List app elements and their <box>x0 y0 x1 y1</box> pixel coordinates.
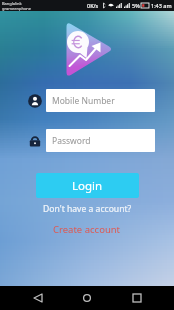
button[interactable]: Home <box>75 286 99 310</box>
button[interactable]: Mobile Number <box>46 89 155 112</box>
button[interactable]: Login <box>36 173 139 198</box>
staticText: Login <box>72 178 103 194</box>
staticText: Don't have a account? <box>43 203 132 215</box>
staticText: 0K/s <box>87 2 99 9</box>
staticText: grameenphone <box>2 6 32 11</box>
button[interactable]: Back <box>26 286 50 310</box>
staticText: 1:43 am <box>151 2 172 9</box>
staticText: Create account <box>53 223 121 236</box>
staticText: Password <box>52 135 91 147</box>
button[interactable]: Password <box>46 129 155 152</box>
staticText: Mobile Number <box>52 95 115 107</box>
staticText: Banglalink <box>2 1 22 6</box>
staticText: 5% <box>132 2 140 9</box>
button[interactable]: Create account <box>53 223 121 236</box>
button[interactable]: Recents <box>125 286 149 310</box>
